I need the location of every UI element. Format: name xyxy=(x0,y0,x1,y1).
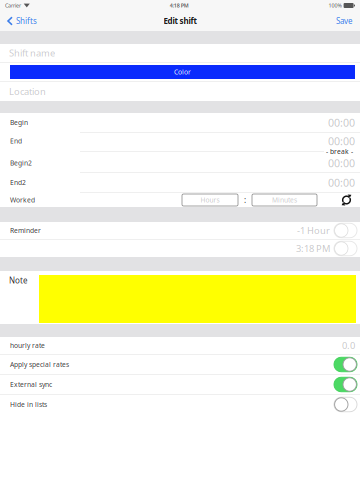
staticText: 100% xyxy=(329,2,342,9)
staticText: Save xyxy=(336,16,353,26)
button[interactable]: End xyxy=(0,133,360,149)
staticText: : xyxy=(244,195,246,205)
button[interactable]: External sync xyxy=(0,375,360,394)
staticText: Hours xyxy=(200,196,219,204)
button[interactable]: Reminder xyxy=(0,222,360,239)
button[interactable]: Color xyxy=(0,63,360,81)
button[interactable]: Hours xyxy=(182,194,238,206)
staticText: Carrier xyxy=(5,2,21,9)
button[interactable]: End2 xyxy=(0,173,360,192)
staticText: Edit shift xyxy=(163,16,196,26)
staticText: Begin2 xyxy=(10,159,32,167)
staticText: -1 Hour xyxy=(297,224,330,237)
button[interactable]: Shifts xyxy=(0,11,44,31)
staticText: Apply special rates xyxy=(10,360,69,369)
button[interactable]: Apply special rates xyxy=(0,355,360,374)
staticText: Location xyxy=(9,85,46,98)
staticText: External sync xyxy=(10,380,52,389)
staticText: 00:00 xyxy=(328,115,355,130)
button[interactable]: Begin2 xyxy=(0,154,360,172)
button[interactable]: hourly rate xyxy=(0,337,360,354)
staticText: Begin xyxy=(10,118,28,127)
staticText: Color xyxy=(174,68,191,76)
staticText: 00:00 xyxy=(328,134,355,148)
button[interactable]: Location xyxy=(0,82,360,101)
button[interactable]: Recalculate worked time xyxy=(341,194,352,205)
staticText: 00:00 xyxy=(328,175,355,190)
button[interactable]: Begin xyxy=(0,113,360,132)
staticText: 4:18 PM xyxy=(170,2,189,9)
button[interactable]: Hide in lists xyxy=(0,395,360,414)
button[interactable]: 3:18 PM xyxy=(0,240,360,257)
staticText: - break - xyxy=(326,147,353,156)
button[interactable]: Shift name xyxy=(0,44,360,62)
staticText: Hide in lists xyxy=(10,400,47,409)
staticText: Minutes xyxy=(272,196,297,204)
staticText: End xyxy=(10,137,22,145)
staticText: End2 xyxy=(10,178,26,187)
staticText: hourly rate xyxy=(10,341,45,350)
button[interactable]: Save xyxy=(329,11,360,31)
staticText: 3:18 PM xyxy=(296,242,330,255)
staticText: 00:00 xyxy=(328,156,355,170)
staticText: Worked xyxy=(10,196,35,204)
button[interactable]: Minutes xyxy=(252,194,317,206)
staticText: 0.0 xyxy=(342,339,355,352)
staticText: Shifts xyxy=(16,16,37,26)
staticText: Note xyxy=(9,275,28,286)
staticText: Reminder xyxy=(10,226,41,235)
staticText: Shift name xyxy=(9,47,55,59)
